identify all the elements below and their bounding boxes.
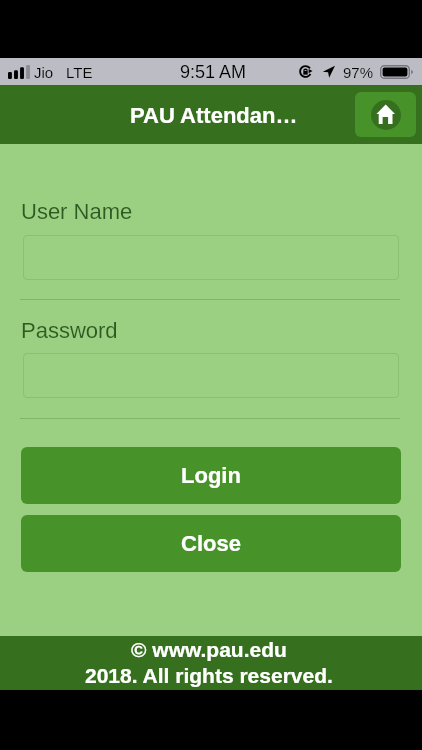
staticText: 2018. All rights reserved. [85,664,333,687]
staticText: Password [21,318,118,343]
staticText: Login [181,463,241,488]
button[interactable]: Login [21,447,401,504]
button[interactable]: User Name [23,235,399,280]
button[interactable]: Password [23,353,399,398]
staticText: Close [181,531,241,556]
button[interactable]: Close [21,515,401,572]
staticText: PAU Attendan… [130,103,298,128]
other: Rotation lock [299,65,313,79]
staticText: User Name [21,199,133,224]
staticText: 97% [343,64,374,81]
button[interactable]: Home [355,92,416,137]
staticText: LTE [66,64,93,81]
staticText: 9:51 AM [180,62,247,82]
other: Battery 97 percent [380,65,415,80]
other: Location [322,65,335,78]
other: Cellular signal [8,65,30,79]
staticText: Jio [34,64,54,81]
button[interactable]: © www.pau.edu [131,638,287,661]
